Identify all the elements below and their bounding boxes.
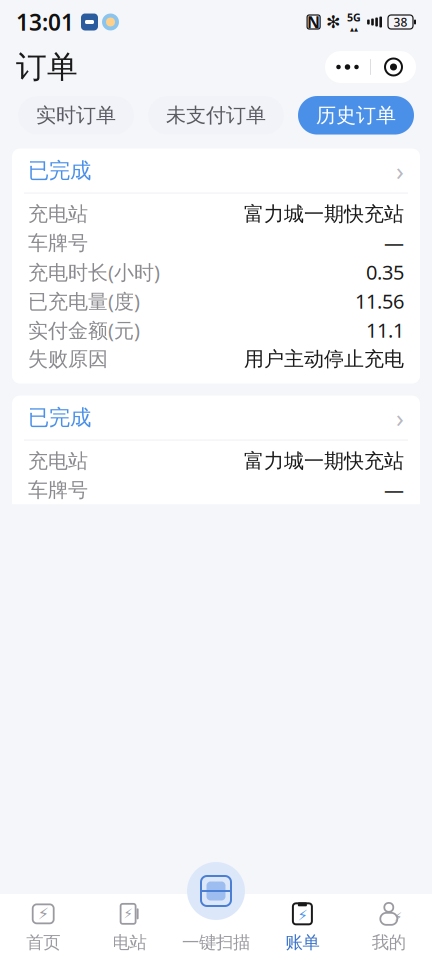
staticText: ✻ (326, 12, 341, 32)
button[interactable]: 更多 (325, 51, 370, 83)
staticText: N (307, 11, 320, 33)
staticText: 充电时长(小时) (28, 259, 160, 285)
button[interactable]: 未支付订单 (148, 96, 284, 135)
staticText: 13:01 (16, 7, 74, 37)
staticText: 已完成 (28, 157, 91, 184)
button[interactable]: 已完成 (12, 149, 420, 193)
staticText: 0.35 (366, 259, 404, 285)
button[interactable]: ⚡︎ (346, 894, 432, 960)
staticText: 11.1 (366, 317, 404, 343)
staticText: 未支付订单 (166, 103, 266, 128)
staticText: 用户主动停止充电 (244, 347, 404, 371)
staticText: 车牌号 (28, 478, 88, 502)
staticText: 首页 (26, 932, 60, 953)
staticText: › (396, 154, 404, 187)
staticText: 实付金额(元) (28, 317, 140, 343)
staticText: ⚡︎ (297, 907, 307, 924)
staticText: 已完成 (28, 404, 91, 431)
staticText: 我的 (372, 932, 406, 953)
staticText: 充电站 (28, 449, 88, 473)
staticText: 38 (393, 14, 407, 30)
button[interactable]: 一键扫描 (187, 862, 245, 920)
button[interactable]: 一键扫描 (173, 894, 259, 960)
staticText: 历史订单 (316, 103, 396, 128)
staticText: 富力城一期快充站 (244, 449, 404, 473)
staticText: 11.56 (355, 288, 404, 314)
staticText: 5G (347, 10, 361, 25)
staticText: 实时订单 (36, 103, 116, 128)
button[interactable]: 关闭 (371, 51, 416, 83)
button[interactable]: ⚡︎ (0, 894, 86, 960)
staticText: 一键扫描 (182, 932, 250, 953)
staticText: › (396, 401, 404, 434)
staticText: — (384, 230, 404, 256)
button[interactable]: 实时订单 (18, 96, 134, 135)
button[interactable]: 已完成 (12, 396, 420, 440)
staticText: 富力城一期快充站 (244, 202, 404, 226)
button[interactable]: 历史订单 (298, 96, 414, 135)
staticText: — (384, 477, 404, 503)
staticText: 车牌号 (28, 231, 88, 255)
staticText: ⚡︎ (124, 906, 133, 921)
staticText: ▴▴ (350, 24, 358, 34)
staticText: 充电站 (28, 202, 88, 226)
staticText: 电站 (113, 932, 147, 953)
staticText: ⚡︎ (38, 905, 49, 923)
staticText: 账单 (285, 932, 319, 953)
button[interactable]: ⚡︎ (259, 894, 346, 960)
button[interactable]: ⚡︎ (86, 894, 173, 960)
staticText: ⚡︎ (394, 910, 402, 924)
staticText: 已充电量(度) (28, 288, 140, 314)
staticText: 失败原因 (28, 347, 108, 371)
staticText: 订单 (16, 48, 78, 86)
